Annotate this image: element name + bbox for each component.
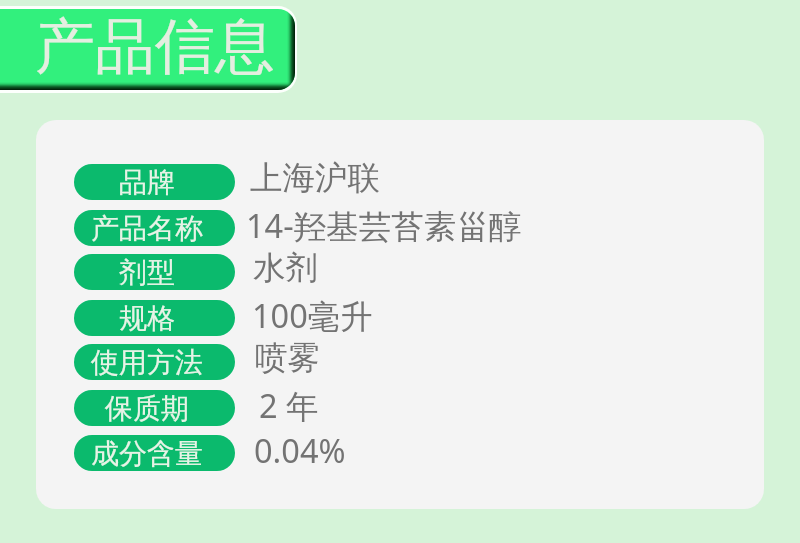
- button[interactable]: 品牌: [74, 164, 235, 200]
- button[interactable]: 产品名称: [74, 210, 235, 246]
- staticText: 保质期: [105, 391, 189, 426]
- staticText: 水剂: [253, 248, 318, 289]
- staticText: 规格: [119, 301, 175, 336]
- staticText: 喷雾: [255, 338, 320, 379]
- staticText: 100毫升: [252, 293, 373, 337]
- staticText: 0.04%: [254, 428, 346, 472]
- staticText: 成分含量: [91, 436, 203, 471]
- staticText: 品牌: [119, 165, 175, 200]
- button[interactable]: 保质期: [74, 390, 235, 426]
- button[interactable]: 规格: [74, 300, 235, 336]
- button[interactable]: 使用方法: [74, 344, 235, 380]
- button[interactable]: 产品信息: [0, 6, 297, 93]
- button[interactable]: 剂型: [74, 254, 235, 290]
- staticText: 使用方法: [91, 345, 203, 380]
- staticText: 剂型: [119, 255, 175, 290]
- staticText: 产品名称: [91, 211, 203, 246]
- button[interactable]: 成分含量: [74, 435, 235, 471]
- staticText: 14-羟基芸苔素甾醇: [246, 203, 522, 247]
- staticText: 上海沪联: [250, 158, 380, 199]
- staticText: 2 年: [259, 383, 319, 427]
- staticText: 产品信息: [35, 9, 275, 85]
